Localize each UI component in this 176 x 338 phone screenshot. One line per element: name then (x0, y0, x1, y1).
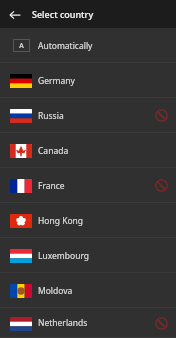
staticText: Select country (32, 8, 94, 20)
staticText: Germany (38, 75, 75, 87)
staticText: A (19, 41, 24, 51)
other: Calls blocked (155, 317, 168, 330)
button[interactable]: Canada (0, 133, 176, 168)
button[interactable]: Back (4, 4, 25, 25)
button[interactable]: Germany (0, 63, 176, 98)
staticText: Netherlands (38, 317, 88, 329)
staticText: Moldova (38, 285, 73, 297)
staticText: Luxembourg (38, 250, 90, 262)
button[interactable]: Luxembourg (0, 238, 176, 273)
other: Calls blocked (155, 179, 168, 192)
staticText: Hong Kong (38, 215, 84, 227)
staticText: Automatically (38, 40, 93, 52)
other: Calls blocked (155, 109, 168, 122)
button[interactable]: Hong Kong (0, 203, 176, 238)
button[interactable]: Moldova (0, 273, 176, 308)
staticText: Canada (38, 145, 69, 157)
button[interactable]: Russia (0, 98, 176, 133)
staticText: France (38, 180, 65, 192)
button[interactable]: France (0, 168, 176, 203)
button[interactable]: Netherlands (0, 308, 176, 338)
staticText: Russia (38, 110, 64, 122)
button[interactable]: A (0, 28, 176, 63)
